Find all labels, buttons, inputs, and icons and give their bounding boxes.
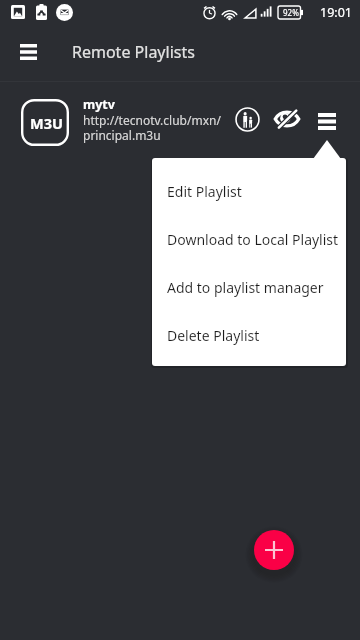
- button[interactable]: Add playlist: [254, 530, 294, 570]
- staticText: Delete Playlist: [167, 326, 260, 345]
- button[interactable]: Download to Local Playlist: [152, 215, 346, 263]
- staticText: Add to playlist manager: [167, 278, 324, 297]
- button[interactable]: Edit Playlist: [152, 167, 346, 215]
- button[interactable]: Delete Playlist: [152, 311, 346, 359]
- staticText: Edit Playlist: [167, 182, 242, 201]
- staticText: M3U: [30, 113, 63, 133]
- button[interactable]: M3U: [0, 82, 360, 148]
- button[interactable]: Open navigation drawer: [6, 30, 50, 74]
- button[interactable]: Parental control: [231, 103, 263, 135]
- staticText: Remote Playlists: [72, 41, 195, 63]
- staticText: mytv: [83, 96, 115, 113]
- staticText: 92%: [283, 7, 299, 18]
- staticText: http://tecnotv.club/mxn/ principal.m3u: [83, 112, 221, 144]
- button[interactable]: More options: [311, 105, 343, 137]
- button[interactable]: Add to playlist manager: [152, 263, 346, 311]
- button[interactable]: Hide playlist: [272, 104, 302, 134]
- staticText: 19:01: [320, 4, 352, 21]
- staticText: Download to Local Playlist: [167, 230, 339, 249]
